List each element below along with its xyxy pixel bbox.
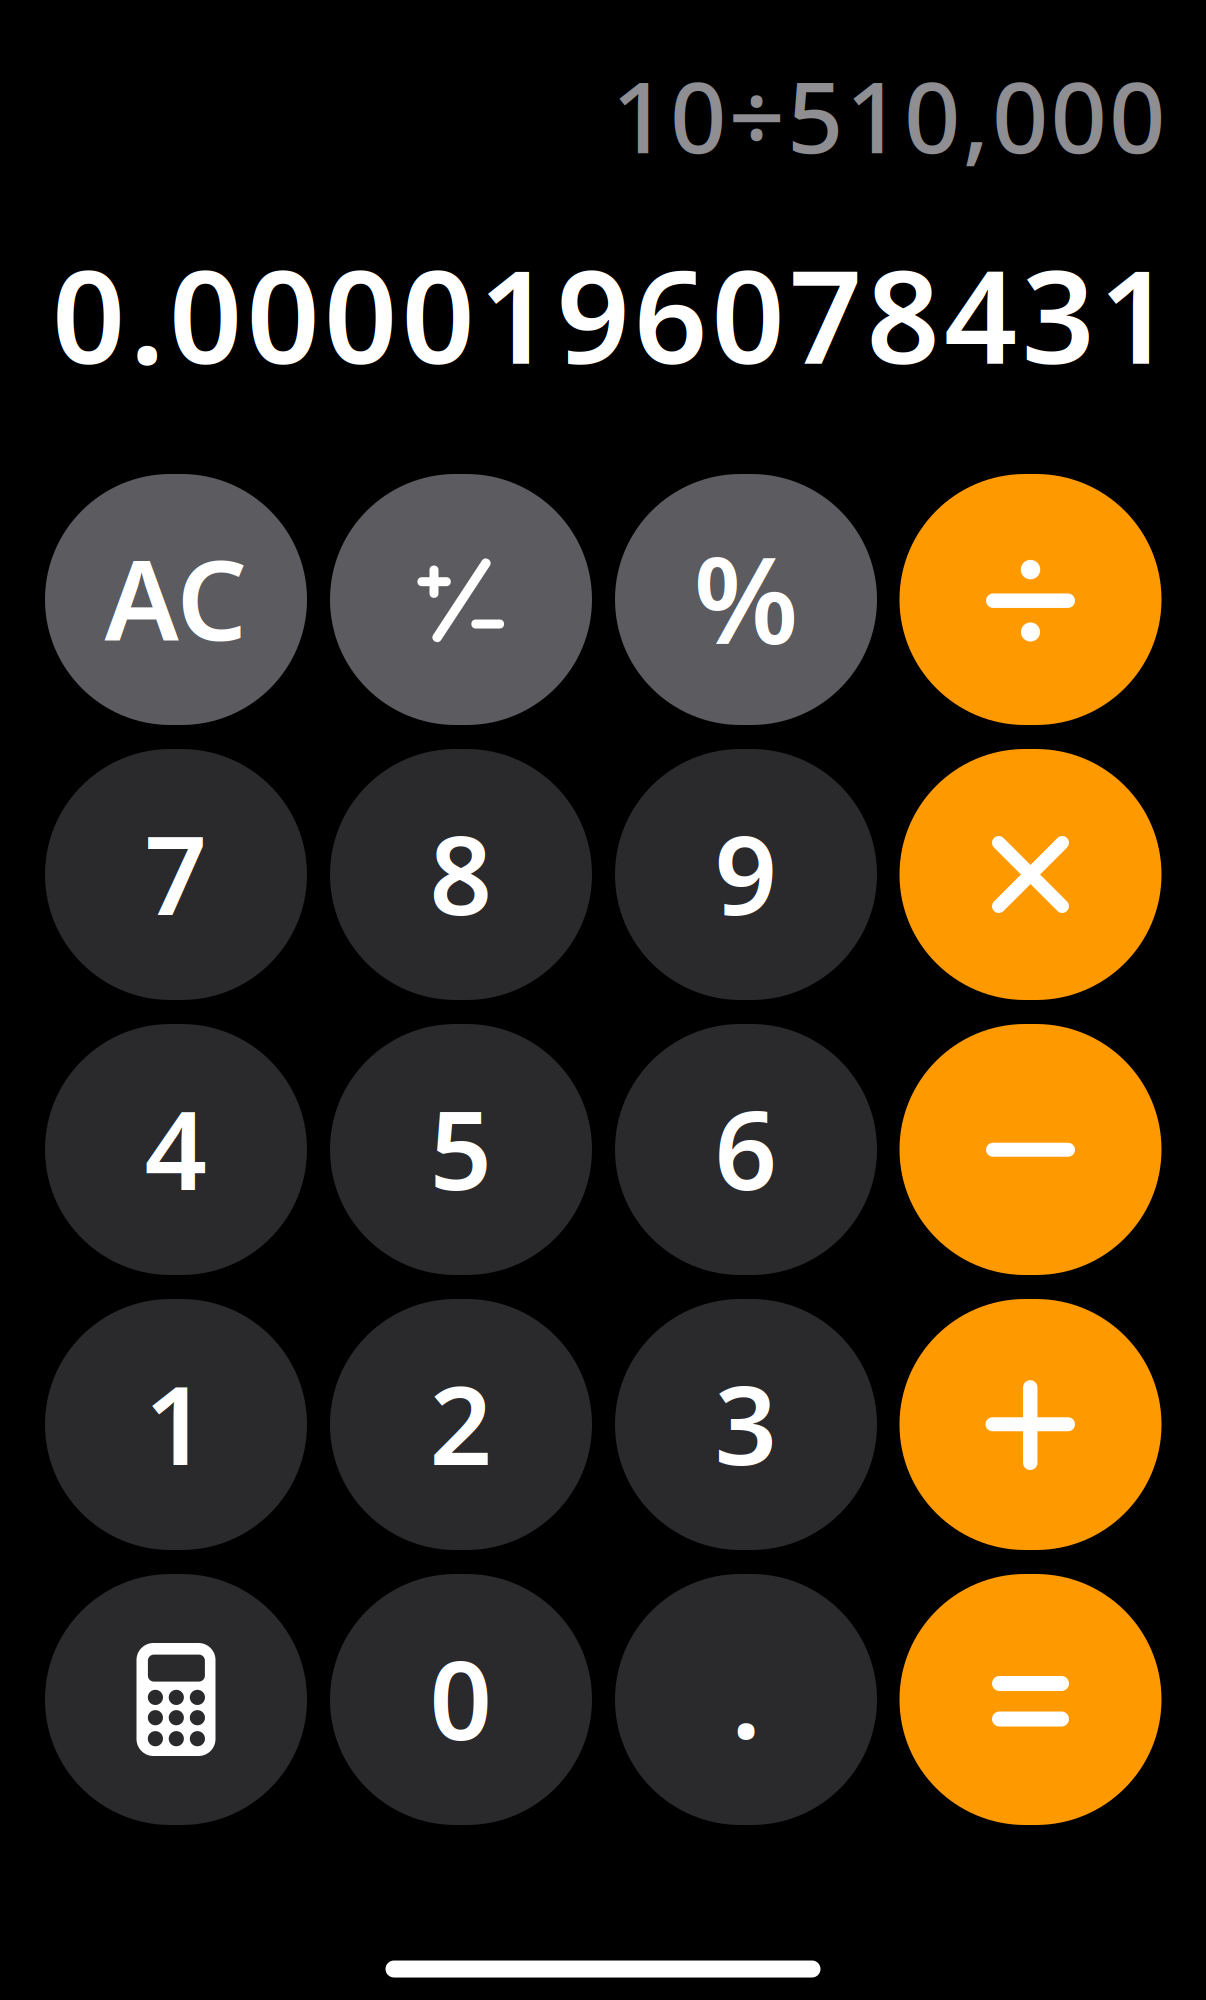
staticText: 9 (714, 800, 777, 945)
button[interactable]: . (615, 1574, 877, 1825)
button[interactable]: 3 (615, 1299, 877, 1550)
staticText: 0 (429, 1625, 492, 1770)
staticText: 0.0000196078431 (52, 229, 1172, 399)
button[interactable]: Multiply (899, 749, 1161, 1000)
staticText: 8 (429, 800, 492, 945)
button[interactable]: 2 (330, 1299, 592, 1550)
staticText: 6 (714, 1075, 777, 1220)
staticText: % (693, 518, 798, 677)
button[interactable]: 0 (330, 1574, 592, 1825)
staticText: 7 (144, 800, 207, 945)
staticText: AC (104, 524, 247, 671)
button[interactable]: 7 (45, 749, 307, 1000)
button[interactable]: 4 (45, 1024, 307, 1275)
button[interactable]: 9 (615, 749, 877, 1000)
staticText: 3 (714, 1350, 777, 1495)
staticText: 4 (144, 1075, 207, 1220)
button[interactable]: % (615, 474, 877, 725)
button[interactable]: Calculator (45, 1574, 307, 1825)
staticText: 2 (429, 1350, 492, 1495)
button[interactable]: Toggle sign (330, 474, 592, 725)
staticText: 10÷510,000 (611, 49, 1165, 180)
button[interactable]: 1 (45, 1299, 307, 1550)
staticText: 5 (429, 1075, 492, 1220)
button[interactable]: Equals (899, 1574, 1161, 1825)
staticText: . (731, 1624, 761, 1769)
button[interactable]: 8 (330, 749, 592, 1000)
button[interactable]: 6 (615, 1024, 877, 1275)
button[interactable]: 5 (330, 1024, 592, 1275)
button[interactable]: Divide (899, 474, 1161, 725)
staticText: 1 (144, 1350, 207, 1495)
button[interactable]: Subtract (899, 1024, 1161, 1275)
button[interactable]: Add (899, 1299, 1161, 1550)
button[interactable]: AC (45, 474, 307, 725)
